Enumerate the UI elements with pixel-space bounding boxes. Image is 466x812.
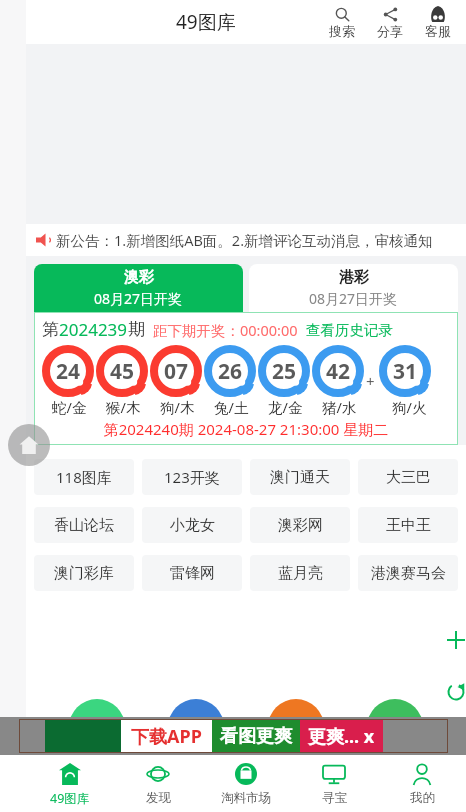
staticText: 发现 bbox=[146, 790, 171, 806]
staticText: 123开奖 bbox=[164, 467, 220, 487]
staticText: 2024239 bbox=[59, 318, 128, 341]
staticText: 蛇/金 bbox=[52, 397, 87, 417]
button[interactable]: 49图库 bbox=[26, 755, 114, 812]
button[interactable]: 香山论坛 bbox=[34, 507, 134, 543]
staticText: 雷锋网 bbox=[170, 564, 215, 583]
staticText: 狗/火 bbox=[392, 397, 427, 417]
staticText: 49图库 bbox=[50, 790, 90, 807]
button[interactable]: 澳彩 bbox=[34, 264, 243, 312]
staticText: 期 bbox=[128, 319, 145, 340]
staticText: 26 bbox=[218, 357, 243, 386]
staticText: 45 bbox=[110, 357, 135, 386]
staticText: 分享 bbox=[377, 23, 403, 39]
staticText: 港彩 bbox=[339, 268, 369, 287]
button[interactable]: 分享 bbox=[366, 5, 414, 39]
staticText: 澳门通天 bbox=[270, 468, 330, 487]
staticText: 寻宝 bbox=[322, 790, 347, 806]
button[interactable]: 我的 bbox=[378, 755, 466, 812]
staticText: 兔/土 bbox=[214, 397, 249, 417]
staticText: 第2024240期 2024-08-27 21:30:00 星期二 bbox=[42, 419, 450, 439]
button[interactable]: 新公告：1.新增图纸AB面。2.新增评论互动消息，审核通知 bbox=[36, 224, 466, 256]
button[interactable]: Home bbox=[8, 424, 50, 466]
staticText: 猪/水 bbox=[322, 397, 357, 417]
staticText: 澳门彩库 bbox=[54, 564, 114, 583]
staticText: 淘料市场 bbox=[221, 790, 271, 806]
button[interactable] bbox=[268, 699, 324, 755]
button[interactable]: 小龙女 bbox=[142, 507, 242, 543]
button[interactable]: 客服 bbox=[414, 5, 462, 39]
staticText: 49图库 bbox=[176, 9, 236, 35]
staticText: 更爽... x bbox=[308, 724, 375, 749]
button[interactable]: 澳门彩库 bbox=[34, 555, 134, 591]
staticText: 大三巴 bbox=[386, 468, 431, 487]
button[interactable] bbox=[168, 699, 224, 755]
button[interactable]: 澳门通天 bbox=[250, 459, 350, 495]
button[interactable]: Add bbox=[436, 620, 466, 660]
staticText: 澳彩 bbox=[124, 268, 154, 287]
staticText: 下载APP bbox=[131, 724, 202, 749]
staticText: + bbox=[366, 371, 375, 391]
staticText: 新公告：1.新增图纸AB面。2.新增评论互动消息，审核通知 bbox=[56, 230, 433, 250]
button[interactable]: 大三巴 bbox=[358, 459, 458, 495]
button[interactable]: 港彩 bbox=[249, 264, 458, 312]
staticText: 澳彩网 bbox=[278, 516, 323, 535]
button[interactable]: 发现 bbox=[114, 755, 202, 812]
staticText: 看图更爽 bbox=[220, 725, 292, 748]
staticText: 25 bbox=[272, 357, 297, 386]
staticText: 第 bbox=[42, 319, 59, 340]
staticText: 王中王 bbox=[386, 516, 431, 535]
staticText: 小龙女 bbox=[170, 516, 215, 535]
staticText: 香山论坛 bbox=[54, 516, 114, 535]
staticText: 港澳赛马会 bbox=[371, 564, 446, 583]
staticText: 搜索 bbox=[329, 23, 355, 39]
staticText: 客服 bbox=[425, 23, 451, 39]
staticText: 08月27日开奖 bbox=[94, 289, 183, 308]
button[interactable]: 淘料市场 bbox=[202, 755, 290, 812]
button[interactable]: 王中王 bbox=[358, 507, 458, 543]
staticText: 我的 bbox=[410, 790, 435, 806]
button[interactable]: 123开奖 bbox=[142, 459, 242, 495]
button[interactable] bbox=[367, 699, 423, 755]
staticText: 42 bbox=[326, 357, 351, 386]
staticText: 距下期开奖：00:00:00 bbox=[153, 320, 298, 340]
button[interactable]: Refresh bbox=[436, 672, 466, 712]
button[interactable]: 蓝月亮 bbox=[250, 555, 350, 591]
button[interactable]: 寻宝 bbox=[290, 755, 378, 812]
button[interactable]: 港澳赛马会 bbox=[358, 555, 458, 591]
staticText: 狗/木 bbox=[160, 397, 195, 417]
button[interactable]: 搜索 bbox=[318, 5, 366, 39]
staticText: 猴/木 bbox=[106, 397, 141, 417]
button[interactable]: 查看历史记录 bbox=[306, 321, 393, 339]
staticText: 118图库 bbox=[56, 467, 112, 487]
staticText: 08月27日开奖 bbox=[309, 289, 398, 308]
button[interactable]: 雷锋网 bbox=[142, 555, 242, 591]
button[interactable]: 118图库 bbox=[34, 459, 134, 495]
staticText: 24 bbox=[56, 357, 81, 386]
button[interactable]: 澳彩网 bbox=[250, 507, 350, 543]
button[interactable] bbox=[69, 699, 125, 755]
staticText: 龙/金 bbox=[268, 397, 303, 417]
staticText: 31 bbox=[393, 357, 418, 386]
staticText: 蓝月亮 bbox=[278, 564, 323, 583]
staticText: 07 bbox=[164, 357, 189, 386]
